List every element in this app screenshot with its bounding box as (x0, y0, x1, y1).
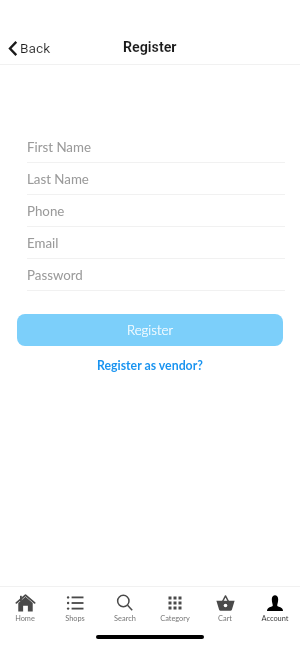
button[interactable]: Password (27, 259, 285, 291)
other: Back (8, 41, 17, 56)
staticText: Search (114, 614, 136, 623)
button[interactable]: Search (100, 592, 150, 623)
button[interactable]: First Name (27, 131, 285, 163)
staticText: Email (27, 235, 59, 251)
button[interactable]: Register as vendor? (93, 354, 207, 377)
button[interactable]: Email (27, 227, 285, 259)
staticText: First Name (27, 139, 91, 155)
button[interactable]: Home (0, 592, 50, 623)
staticText: Register (123, 39, 177, 56)
staticText: Shops (65, 614, 85, 623)
staticText: Password (27, 267, 83, 283)
button[interactable]: Back (4, 37, 55, 59)
button[interactable]: Account (250, 592, 300, 623)
button[interactable]: Category (150, 592, 200, 623)
staticText: Phone (27, 203, 65, 219)
staticText: Last Name (27, 171, 89, 187)
button[interactable]: Phone (27, 195, 285, 227)
staticText: Register (127, 322, 174, 338)
button[interactable]: Cart (200, 592, 250, 623)
staticText: Account (261, 614, 289, 623)
button[interactable]: Shops (50, 592, 100, 623)
button[interactable]: Last Name (27, 163, 285, 195)
staticText: Home (15, 614, 35, 623)
staticText: Cart (218, 614, 232, 623)
button[interactable]: Register (17, 314, 283, 346)
staticText: Category (160, 614, 190, 623)
staticText: Back (20, 40, 51, 56)
